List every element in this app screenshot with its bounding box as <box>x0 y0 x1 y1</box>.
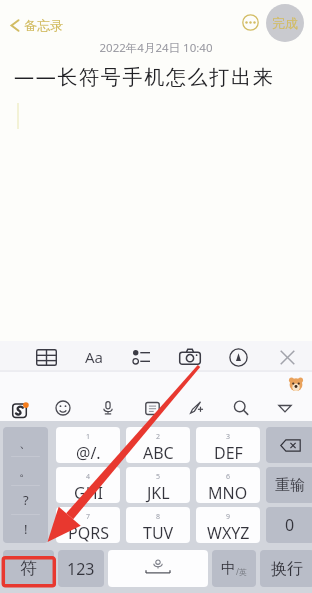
staticText: 1 <box>86 432 91 442</box>
button[interactable]: 6 <box>196 467 260 503</box>
button[interactable]: Voice input <box>95 395 121 421</box>
button[interactable]: 2 <box>126 427 190 463</box>
button[interactable]: 4 <box>56 467 120 503</box>
staticText: DEF <box>214 442 243 463</box>
button[interactable]: ! <box>3 515 48 543</box>
button[interactable]: 。 <box>3 457 48 485</box>
button[interactable]: Markup <box>225 344 251 370</box>
staticText: @/. <box>76 442 101 463</box>
staticText: 备忘录 <box>24 17 63 33</box>
button[interactable]: 、 <box>3 427 48 543</box>
button[interactable]: 0 <box>266 507 312 543</box>
staticText: JKL <box>147 482 170 503</box>
button[interactable]: More options <box>242 14 259 31</box>
staticText: 符 <box>20 558 37 579</box>
staticText: 。 <box>19 463 32 479</box>
staticText: 7 <box>86 512 91 522</box>
button[interactable]: 中 <box>212 550 256 587</box>
staticText: ? <box>23 491 29 509</box>
staticText: 、 <box>19 434 32 450</box>
staticText: 2 <box>156 432 161 442</box>
button[interactable]: 8 <box>126 507 190 543</box>
staticText: 9 <box>226 512 231 522</box>
button[interactable]: 5 <box>126 467 190 503</box>
staticText: Aa <box>85 347 104 367</box>
staticText: TUV <box>143 522 174 543</box>
button[interactable]: ? <box>3 486 48 514</box>
button[interactable]: 3 <box>196 427 260 463</box>
button[interactable]: 完成 <box>266 4 304 42</box>
staticText: PQRS <box>68 522 109 543</box>
button[interactable]: 重输 <box>266 467 312 503</box>
staticText: 完成 <box>272 15 298 31</box>
staticText: 0 <box>285 514 295 536</box>
staticText: WXYZ <box>207 522 250 543</box>
staticText: GHI <box>74 482 103 503</box>
button[interactable]: 9 <box>196 507 260 543</box>
staticText: 2022年4月24日 10:40 <box>0 40 312 56</box>
staticText: 中 <box>221 559 236 578</box>
button[interactable]: Hide keyboard <box>272 395 298 421</box>
button[interactable]: Sogou input <box>6 395 32 421</box>
button[interactable]: Handwriting <box>183 395 209 421</box>
staticText: 重输 <box>275 476 305 495</box>
button[interactable]: Camera <box>177 344 203 370</box>
staticText: 8 <box>156 512 161 522</box>
staticText: MNO <box>208 482 248 503</box>
button[interactable]: 符 <box>3 550 54 587</box>
staticText: ! <box>24 520 28 538</box>
staticText: 4 <box>86 472 91 482</box>
button[interactable]: 备忘录 <box>8 14 65 36</box>
staticText: 5 <box>156 472 161 482</box>
staticText: 123 <box>67 558 95 580</box>
button[interactable]: Search <box>228 395 254 421</box>
button[interactable]: 123 <box>58 550 104 587</box>
button[interactable]: Emoji <box>50 395 76 421</box>
button[interactable]: 、 <box>3 427 48 456</box>
staticText: 6 <box>226 472 231 482</box>
button[interactable]: Checklist <box>128 344 154 370</box>
button[interactable]: Insert table <box>33 344 59 370</box>
staticText: 3 <box>226 432 231 442</box>
button[interactable]: 换行 <box>260 550 312 587</box>
button[interactable]: 1 <box>56 427 120 463</box>
staticText: ——长符号手机怎么打出来 <box>14 63 275 90</box>
button[interactable]: 7 <box>56 507 120 543</box>
staticText: 换行 <box>271 559 303 579</box>
staticText: ABC <box>143 442 174 463</box>
button[interactable]: Clipboard <box>139 395 165 421</box>
staticText: /英 <box>236 566 247 577</box>
button[interactable]: Close keyboard <box>274 344 300 370</box>
button[interactable]: Aa <box>82 345 106 369</box>
button[interactable]: Backspace <box>266 427 312 463</box>
button[interactable]: Space <box>108 550 208 587</box>
